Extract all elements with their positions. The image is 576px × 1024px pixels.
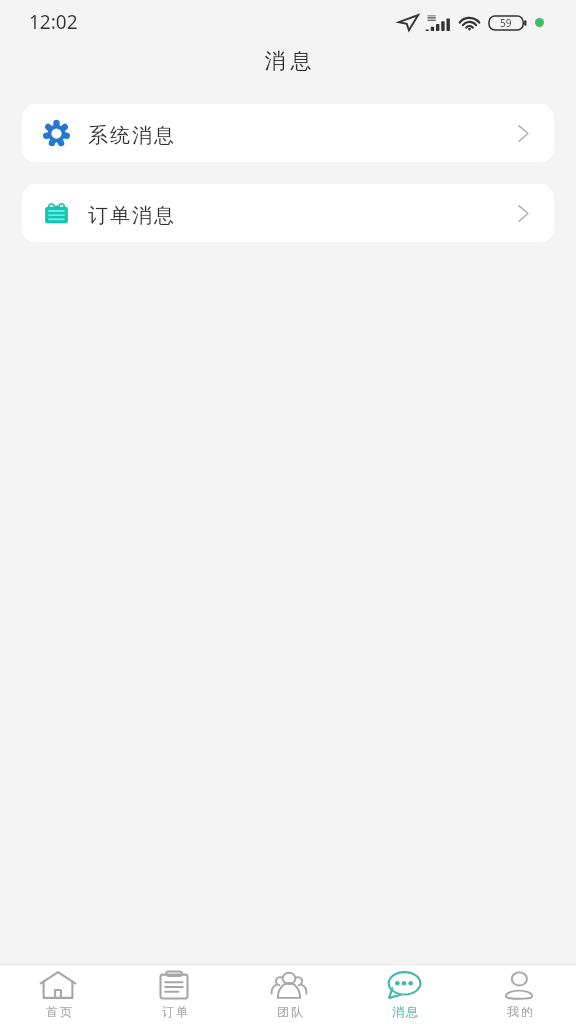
- button[interactable]: 订单: [116, 965, 231, 1024]
- staticText: 订单消息: [87, 203, 175, 228]
- button[interactable]: 系统消息: [22, 104, 554, 162]
- button[interactable]: 首页: [0, 965, 116, 1024]
- staticText: 首页: [45, 1004, 73, 1019]
- button[interactable]: 团队: [231, 965, 346, 1024]
- staticText: 消息: [262, 48, 314, 74]
- staticText: 12:02: [29, 9, 78, 35]
- button[interactable]: 消息: [346, 965, 461, 1024]
- staticText: 消息: [391, 1004, 419, 1019]
- staticText: 订单: [161, 1004, 189, 1019]
- staticText: 59: [500, 16, 512, 30]
- staticText: 团队: [276, 1004, 304, 1019]
- button[interactable]: 订单消息: [22, 184, 554, 242]
- staticText: 我的: [506, 1004, 534, 1019]
- staticText: 系统消息: [87, 123, 175, 148]
- button[interactable]: 我的: [461, 965, 576, 1024]
